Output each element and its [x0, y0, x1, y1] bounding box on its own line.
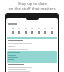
staticText: on the stuff that matters	[8, 6, 56, 11]
button[interactable]	[51, 28, 53, 34]
button[interactable]	[25, 28, 27, 34]
button[interactable]	[38, 28, 40, 34]
button[interactable]	[44, 28, 46, 34]
staticText: Stay up to date	[18, 1, 47, 6]
button[interactable]	[7, 51, 57, 63]
button[interactable]	[18, 28, 20, 34]
button[interactable]	[31, 28, 33, 34]
button[interactable]	[12, 28, 14, 34]
